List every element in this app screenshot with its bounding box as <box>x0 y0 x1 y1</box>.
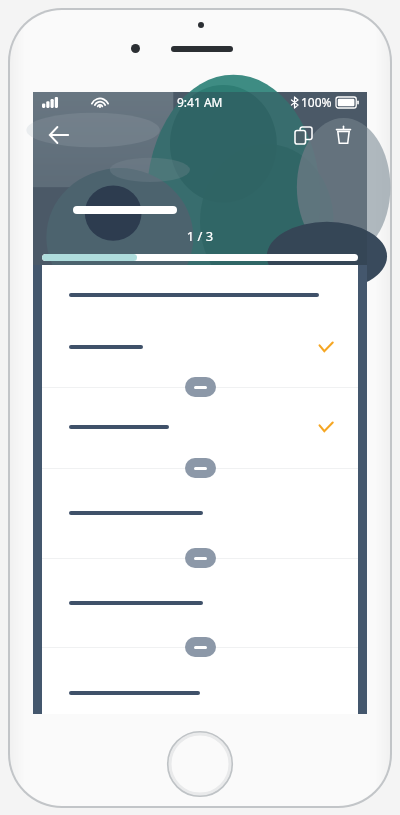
button[interactable]: Reorder <box>185 548 216 568</box>
button[interactable]: Reorder <box>185 458 216 478</box>
button[interactable] <box>42 594 358 612</box>
button[interactable]: Back <box>39 115 79 155</box>
button[interactable]: Completed <box>316 417 336 437</box>
button[interactable] <box>42 415 358 439</box>
button[interactable]: Delete <box>323 115 363 155</box>
button[interactable]: Reorder <box>185 377 216 397</box>
staticText: 9:41 AM <box>177 94 223 110</box>
button[interactable]: Completed <box>316 337 336 357</box>
button[interactable] <box>42 684 358 702</box>
staticText: 1 / 3 <box>33 227 367 245</box>
button[interactable] <box>42 504 358 522</box>
button[interactable]: Reorder <box>185 637 216 657</box>
staticText: 100% <box>301 94 332 110</box>
button[interactable] <box>42 335 358 359</box>
button[interactable]: Duplicate <box>283 115 323 155</box>
button[interactable] <box>42 286 358 304</box>
